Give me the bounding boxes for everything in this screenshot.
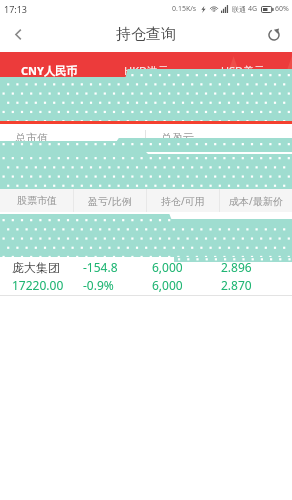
staticText: 0.15K/s — [172, 4, 197, 14]
button[interactable]: 6,000 — [152, 257, 221, 295]
staticText: 股票市值 — [17, 194, 57, 207]
staticText: 成本/最新价 — [229, 194, 283, 208]
staticText: 2.870 — [221, 277, 252, 293]
button[interactable]: Refresh — [256, 17, 292, 52]
staticText: 总盈亏 — [161, 131, 194, 145]
staticText: 17220.00 — [12, 277, 64, 293]
button[interactable]: 盈亏/比例 — [74, 189, 146, 212]
staticText: 联通 — [232, 5, 246, 14]
button[interactable]: Back — [0, 17, 36, 52]
button[interactable]: 庞大集团 — [12, 257, 83, 295]
button[interactable]: USD美元 — [195, 52, 292, 94]
button[interactable]: 成本/最新价 — [220, 189, 292, 212]
staticText: 持仓/可用 — [161, 194, 205, 208]
button[interactable]: 持仓/可用 — [147, 189, 219, 212]
staticText: 盈亏/比例 — [88, 194, 132, 208]
staticText: 总资产 — [111, 94, 147, 109]
staticText: 总市值 — [15, 131, 48, 145]
staticText: 庞大集团 — [12, 260, 60, 275]
button[interactable]: CNY人民币 — [0, 52, 98, 94]
button[interactable]: HKD港元 — [98, 52, 195, 94]
staticText: HKD港元 — [124, 63, 169, 78]
staticText: 17:13 — [4, 3, 28, 15]
button[interactable]: -154.8 — [83, 257, 152, 295]
button[interactable]: 2.896 — [221, 257, 284, 295]
staticText: 6,000 — [152, 259, 183, 275]
staticText: 2.896 — [221, 259, 252, 275]
staticText: 6,000 — [152, 277, 183, 293]
staticText: CNY人民币 — [21, 63, 77, 78]
staticText: USD美元 — [221, 63, 266, 78]
button[interactable]: 银证转账 — [220, 90, 282, 112]
staticText: 60% — [275, 4, 289, 14]
staticText: 4G — [248, 4, 258, 14]
staticText: -154.8 — [83, 259, 118, 275]
staticText: 银证转账 — [229, 94, 273, 108]
staticText: 持仓查询 — [116, 25, 176, 44]
button[interactable]: 股票市值 — [0, 189, 73, 212]
staticText: -0.9% — [83, 277, 114, 293]
